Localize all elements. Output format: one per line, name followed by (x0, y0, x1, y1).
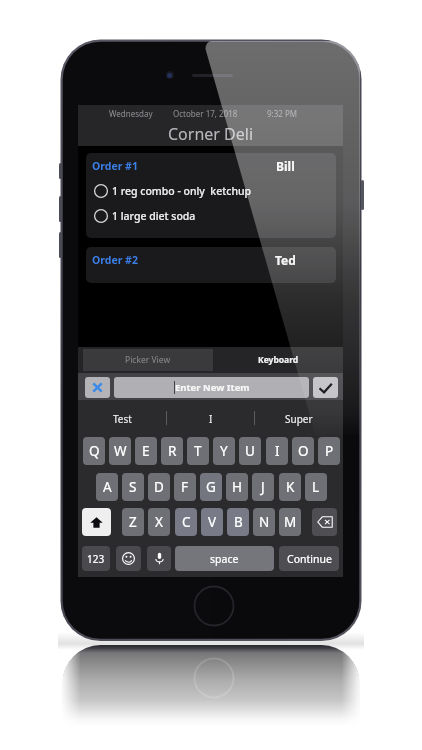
staticText: 123 (87, 552, 105, 566)
button[interactable]: Continue (279, 546, 339, 571)
button[interactable]: C (175, 508, 197, 536)
button[interactable]: Q (83, 437, 105, 465)
staticText: V (208, 513, 217, 531)
button[interactable]: Order #1 (86, 153, 336, 178)
staticText: Y (220, 442, 228, 460)
button[interactable]: I (167, 403, 255, 434)
staticText: Bill (276, 158, 295, 174)
staticText: D (154, 478, 164, 496)
button[interactable]: L (305, 473, 327, 501)
button[interactable]: I (266, 437, 288, 465)
staticText: S (129, 478, 137, 496)
staticText: Corner Deli (168, 123, 254, 145)
staticText: Order #1 (92, 159, 138, 173)
button[interactable]: V (201, 508, 223, 536)
staticText: K (286, 478, 295, 496)
button[interactable]: X (148, 508, 170, 536)
staticText: B (234, 513, 243, 531)
staticText: R (168, 442, 177, 460)
button[interactable]: N (253, 508, 275, 536)
staticText: I (275, 442, 280, 460)
button[interactable]: G (200, 473, 222, 501)
staticText: X (155, 513, 163, 531)
button[interactable]: Order #2 (86, 247, 336, 272)
button[interactable]: Super (255, 403, 343, 434)
button[interactable]: S (122, 473, 144, 501)
button[interactable]: 1 large diet soda (86, 203, 336, 228)
button[interactable]: Cancel (85, 377, 110, 398)
button[interactable]: A (96, 473, 118, 501)
button[interactable]: 123 (82, 546, 110, 571)
button[interactable]: J (252, 473, 274, 501)
button[interactable]: T (187, 437, 209, 465)
staticText: space (210, 552, 239, 566)
staticText: Picker View (125, 354, 171, 366)
button[interactable]: B (227, 508, 249, 536)
staticText: Enter New Item (175, 381, 250, 394)
button[interactable]: R (161, 437, 183, 465)
button[interactable]: W (109, 437, 131, 465)
staticText: Order #2 (92, 253, 138, 267)
staticText: Ted (275, 252, 296, 268)
button[interactable]: F (174, 473, 196, 501)
button[interactable]: Shift (82, 508, 111, 536)
staticText: Wednesday (109, 108, 153, 119)
staticText: October 17, 2018 (173, 108, 238, 119)
staticText: O (298, 442, 309, 460)
button[interactable]: 1 reg combo - only ketchup (86, 178, 336, 203)
staticText: A (103, 478, 112, 496)
staticText: L (312, 478, 320, 496)
button[interactable]: Z (122, 508, 144, 536)
button[interactable]: Enter New Item (114, 377, 309, 398)
staticText: J (261, 478, 265, 496)
button[interactable]: U (239, 437, 261, 465)
staticText: T (194, 442, 202, 460)
staticText: Super (285, 412, 313, 426)
button[interactable]: K (279, 473, 301, 501)
staticText: 1 reg combo - only ketchup (112, 184, 252, 198)
staticText: F (181, 478, 189, 496)
staticText: N (259, 513, 270, 531)
button[interactable]: M (279, 508, 301, 536)
button[interactable]: D (148, 473, 170, 501)
button[interactable]: Test (78, 403, 167, 434)
button[interactable]: Keyboard (213, 347, 343, 373)
staticText: G (206, 478, 216, 496)
button[interactable]: O (292, 437, 314, 465)
button[interactable]: Bill (251, 153, 319, 178)
button[interactable]: Emoji (116, 546, 141, 571)
button[interactable]: Dictation (147, 546, 171, 571)
button[interactable]: H (226, 473, 248, 501)
staticText: P (325, 442, 334, 460)
button[interactable]: Picker View (83, 349, 213, 371)
staticText: Keyboard (258, 354, 299, 366)
button[interactable]: Confirm (313, 377, 338, 398)
staticText: Z (129, 513, 137, 531)
staticText: Q (89, 442, 100, 460)
staticText: Test (113, 412, 132, 426)
button[interactable]: Backspace (312, 508, 337, 536)
staticText: 9:32 PM (267, 108, 298, 119)
staticText: Continue (287, 552, 332, 566)
staticText: 1 large diet soda (112, 209, 196, 223)
staticText: U (245, 442, 255, 460)
staticText: W (114, 442, 127, 460)
staticText: C (182, 513, 191, 531)
button[interactable]: Y (213, 437, 235, 465)
button[interactable]: E (135, 437, 157, 465)
button[interactable]: P (318, 437, 340, 465)
staticText: H (232, 478, 243, 496)
staticText: M (284, 513, 297, 531)
staticText: I (209, 412, 213, 426)
staticText: E (142, 442, 150, 460)
button[interactable]: Ted (251, 247, 319, 272)
button[interactable]: space (175, 546, 274, 571)
